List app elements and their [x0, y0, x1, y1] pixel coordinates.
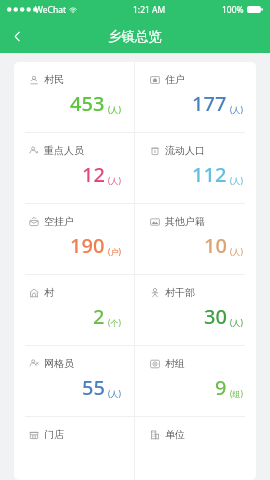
staticText: 门店: [44, 428, 64, 441]
button[interactable]: 其他户籍: [135, 204, 256, 274]
staticText: 乡镇总览: [108, 28, 162, 45]
staticText: (人): [108, 388, 121, 399]
staticText: (人): [108, 175, 121, 186]
staticText: 55: [82, 374, 105, 401]
button[interactable]: 网格员: [14, 346, 134, 416]
button[interactable]: 单位: [135, 417, 256, 480]
staticText: (人): [108, 104, 121, 115]
staticText: 190: [70, 232, 105, 259]
staticText: 重点人员: [44, 144, 84, 157]
staticText: 1:21 AM: [133, 4, 166, 16]
staticText: (人): [230, 104, 243, 115]
staticText: 村组: [165, 357, 185, 370]
staticText: 177: [192, 90, 227, 117]
button[interactable]: 流动人口: [135, 133, 256, 203]
staticText: (户): [108, 246, 121, 257]
staticText: 100%: [222, 4, 244, 16]
staticText: 30: [204, 303, 227, 330]
staticText: WeChat: [35, 4, 66, 16]
staticText: 村干部: [165, 286, 195, 299]
staticText: 网格员: [44, 357, 74, 370]
button[interactable]: 空挂户: [14, 204, 134, 274]
staticText: 10: [204, 232, 227, 259]
staticText: 空挂户: [44, 215, 74, 228]
staticText: 住户: [165, 73, 185, 86]
staticText: 12: [82, 161, 105, 188]
button[interactable]: 村干部: [135, 275, 256, 345]
staticText: 453: [70, 90, 105, 117]
staticText: 9: [215, 374, 227, 401]
staticText: (人): [230, 246, 243, 257]
staticText: 村民: [44, 73, 64, 86]
staticText: 其他户籍: [165, 215, 205, 228]
button[interactable]: 重点人员: [14, 133, 134, 203]
button[interactable]: 住户: [135, 62, 256, 132]
button[interactable]: 村民: [14, 62, 134, 132]
staticText: 村: [44, 286, 54, 299]
staticText: (人): [230, 175, 243, 186]
button[interactable]: 村组: [135, 346, 256, 416]
staticText: 112: [192, 161, 227, 188]
button[interactable]: Back: [0, 19, 34, 53]
staticText: (组): [230, 388, 243, 399]
staticText: 2: [93, 303, 105, 330]
staticText: (人): [230, 317, 243, 328]
staticText: 流动人口: [165, 144, 205, 157]
staticText: (个): [108, 317, 121, 328]
button[interactable]: 门店: [14, 417, 134, 480]
staticText: 单位: [165, 428, 185, 441]
button[interactable]: 村: [14, 275, 134, 345]
